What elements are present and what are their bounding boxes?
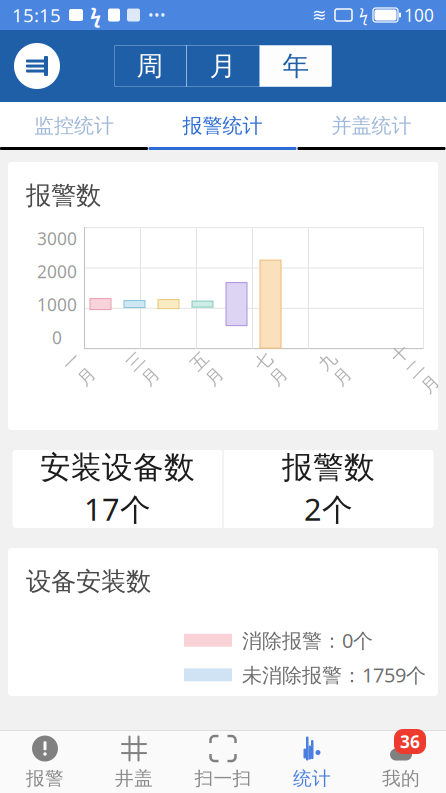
staticText: •••	[148, 5, 166, 25]
staticText: 我的	[382, 767, 420, 790]
staticText: 设备安装数	[26, 566, 151, 597]
button[interactable]: 并盖统计	[297, 102, 445, 150]
button[interactable]: 统计	[267, 731, 356, 793]
staticText: 2000	[37, 260, 77, 283]
staticText: 月	[209, 50, 236, 82]
button[interactable]: 报警	[0, 731, 89, 793]
button[interactable]: 报警数	[223, 450, 433, 528]
staticText: 1000	[37, 293, 77, 316]
button[interactable]: Home	[14, 43, 60, 89]
button[interactable]: 周	[114, 45, 186, 87]
button[interactable]: 安装设备数	[12, 450, 222, 528]
staticText: 井盖	[115, 767, 153, 790]
staticText: 36	[400, 730, 420, 753]
staticText: 并盖统计	[331, 113, 411, 138]
staticText: 统计	[293, 767, 331, 790]
staticText: 0	[52, 326, 62, 349]
staticText: 消除报警：0个	[242, 627, 373, 654]
staticText: ϟ	[90, 2, 101, 28]
staticText: 3000	[37, 227, 77, 250]
staticText: 周	[136, 50, 163, 82]
staticText: 17个	[84, 488, 151, 529]
staticText: 一月	[70, 348, 87, 390]
staticText: 九月	[326, 348, 343, 390]
staticText: 报警数	[282, 449, 375, 486]
staticText: 15:15	[12, 3, 61, 27]
button[interactable]: 井盖	[89, 731, 178, 793]
staticText: 扫一扫	[194, 767, 251, 790]
staticText: 三月	[134, 348, 151, 390]
button[interactable]: 报警统计	[148, 102, 296, 150]
button[interactable]: 36	[356, 731, 445, 793]
button[interactable]: 扫一扫	[178, 731, 267, 793]
staticText: 未消除报警：1759个	[242, 662, 426, 688]
staticText: 七月	[262, 348, 279, 390]
staticText: 2个	[304, 488, 353, 529]
staticText: 十二月	[406, 337, 423, 401]
staticText: 年	[282, 50, 309, 82]
staticText: 报警统计	[182, 113, 262, 138]
staticText: ϟ	[359, 4, 368, 26]
staticText: 报警	[26, 767, 64, 790]
button[interactable]: 月	[187, 45, 259, 87]
button[interactable]: 监控统计	[0, 102, 148, 150]
staticText: ≋	[312, 5, 327, 25]
staticText: 五月	[198, 348, 215, 390]
button[interactable]: 年	[260, 45, 332, 87]
staticText: 100	[404, 3, 434, 26]
staticText: 报警数	[26, 180, 101, 211]
staticText: 监控统计	[34, 113, 114, 138]
staticText: 安装设备数	[40, 449, 195, 486]
